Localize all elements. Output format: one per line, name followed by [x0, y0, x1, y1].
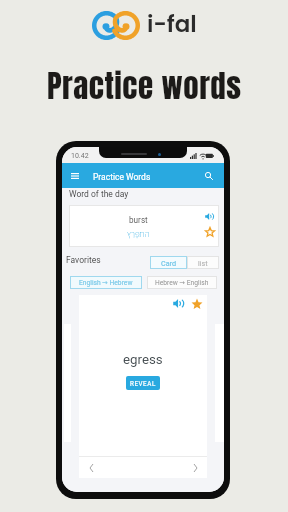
staticText: Favorites	[66, 255, 101, 265]
button[interactable]: Search	[201, 168, 216, 183]
staticText: Word of the day	[69, 189, 129, 199]
button[interactable]: REVEAL	[126, 376, 160, 390]
button[interactable]: list	[187, 256, 219, 269]
staticText: English → Hebrew	[79, 279, 133, 287]
staticText: burst	[129, 215, 148, 225]
button[interactable]: Hebrew → English	[147, 276, 217, 289]
staticText: Card	[161, 259, 177, 267]
button[interactable]: Open navigation menu	[67, 168, 82, 183]
button[interactable]: Add burst to favorites	[203, 225, 216, 238]
staticText: Practice Words	[93, 172, 151, 182]
button[interactable]: Next word	[189, 462, 201, 474]
button[interactable]: Card	[150, 256, 187, 269]
staticText: list	[198, 259, 208, 267]
button[interactable]: Pronounce egress	[172, 297, 185, 310]
button[interactable]: Pronounce burst	[203, 210, 216, 223]
staticText: Hebrew → English	[155, 279, 209, 287]
staticText: i-fal	[147, 8, 197, 40]
button[interactable]: Remove egress from favorites	[190, 297, 203, 310]
staticText: egress	[123, 352, 163, 368]
staticText: REVEAL	[130, 380, 156, 387]
staticText: 10.42	[71, 152, 89, 160]
staticText: התפָּרֵץ	[127, 228, 150, 239]
button[interactable]: Previous word	[85, 462, 97, 474]
staticText: Practice words	[47, 63, 242, 110]
button[interactable]: English → Hebrew	[70, 276, 142, 289]
